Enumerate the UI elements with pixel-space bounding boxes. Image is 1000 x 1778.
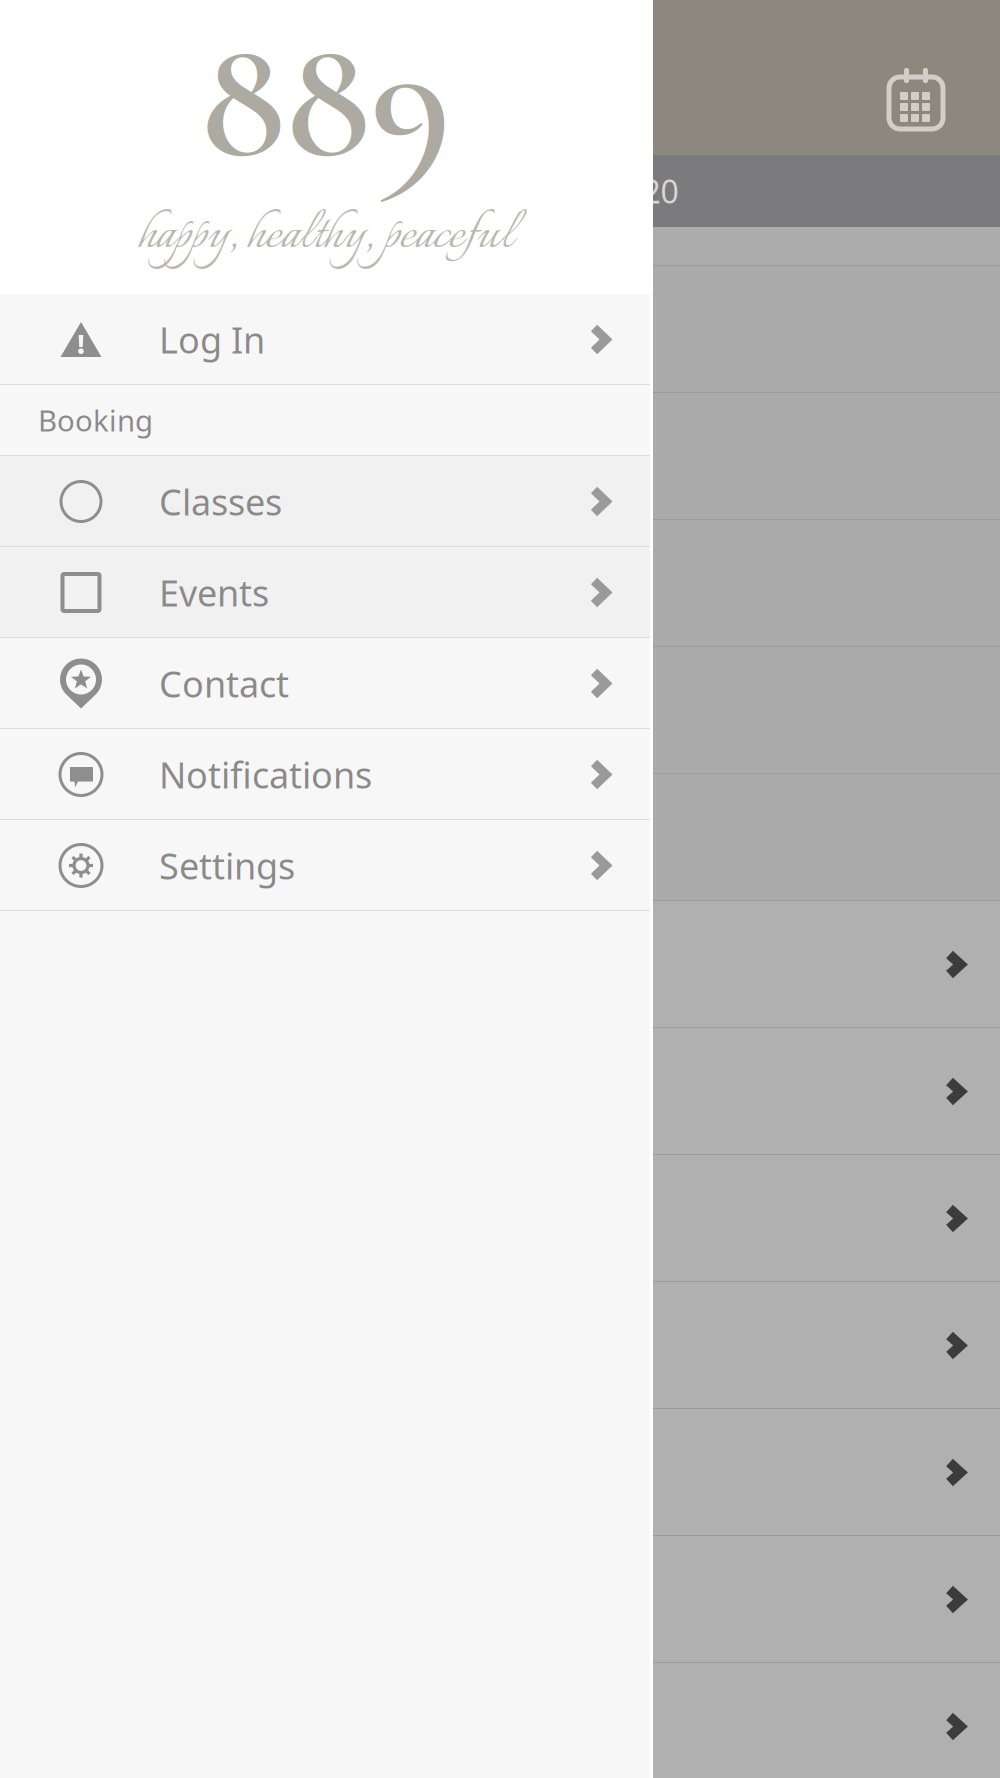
button[interactable]: Contact (0, 638, 652, 729)
staticText: Events (159, 569, 269, 616)
button[interactable]: Notifications (0, 729, 652, 820)
staticText: happy, healthy, peaceful (138, 197, 513, 275)
staticText: Log In (159, 316, 265, 363)
staticText: Notifications (159, 751, 372, 798)
button[interactable]: Classes (0, 456, 652, 547)
staticText: Booking (38, 400, 153, 439)
staticText: Settings (159, 842, 295, 889)
staticText: Tuesday, October 20 (373, 170, 678, 212)
button[interactable]: Log In (0, 294, 652, 385)
button[interactable]: Settings (0, 820, 652, 911)
staticText: 889 (200, 0, 451, 204)
button[interactable]: Calendar (870, 48, 962, 140)
staticText: Classes (159, 478, 282, 525)
button[interactable]: Events (0, 547, 652, 638)
staticText: Contact (159, 660, 289, 707)
